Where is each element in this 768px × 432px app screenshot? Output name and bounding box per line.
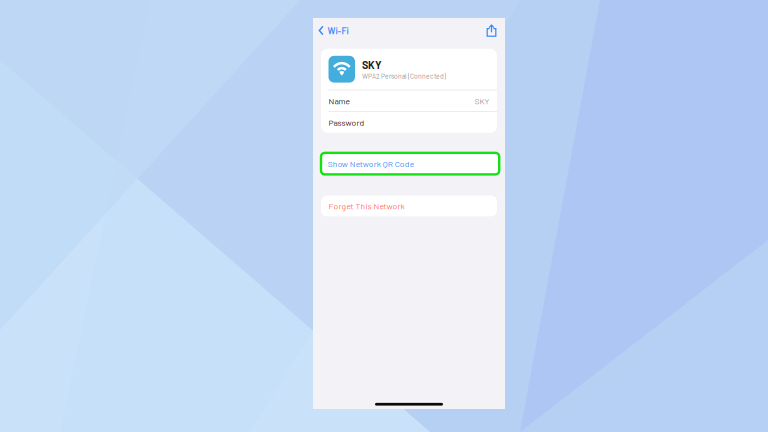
- button[interactable]: Share: [482, 18, 505, 43]
- staticText: Forget This Network: [328, 201, 404, 211]
- staticText: Wi-Fi: [328, 25, 349, 36]
- staticText: WPA2 Personal (Connected): [362, 72, 446, 80]
- staticText: Password: [328, 117, 364, 127]
- button[interactable]: Show Network QR Code: [321, 153, 499, 174]
- staticText: SKY: [362, 58, 382, 71]
- button[interactable]: Wi-Fi: [313, 18, 353, 43]
- staticText: SKY: [474, 96, 489, 106]
- staticText: Show Network QR Code: [328, 158, 415, 169]
- button[interactable]: Forget This Network: [321, 195, 497, 216]
- staticText: Name: [328, 96, 350, 106]
